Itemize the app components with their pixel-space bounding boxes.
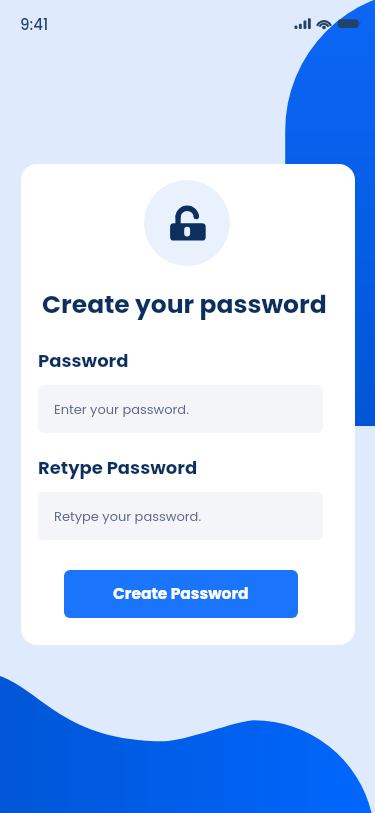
staticText: Create your password: [42, 287, 327, 322]
staticText: Create Password: [113, 583, 249, 605]
other: Status icons: [292, 14, 364, 32]
staticText: Password: [38, 348, 129, 373]
button[interactable]: Enter your password.: [38, 385, 323, 433]
other: Unlock: [144, 180, 230, 266]
staticText: 9:41: [20, 14, 49, 35]
staticText: Retype your password.: [54, 507, 202, 525]
button[interactable]: Retype your password.: [38, 492, 323, 540]
staticText: Retype Password: [38, 455, 198, 480]
button[interactable]: Create Password: [64, 570, 298, 618]
staticText: Enter your password.: [54, 400, 189, 418]
